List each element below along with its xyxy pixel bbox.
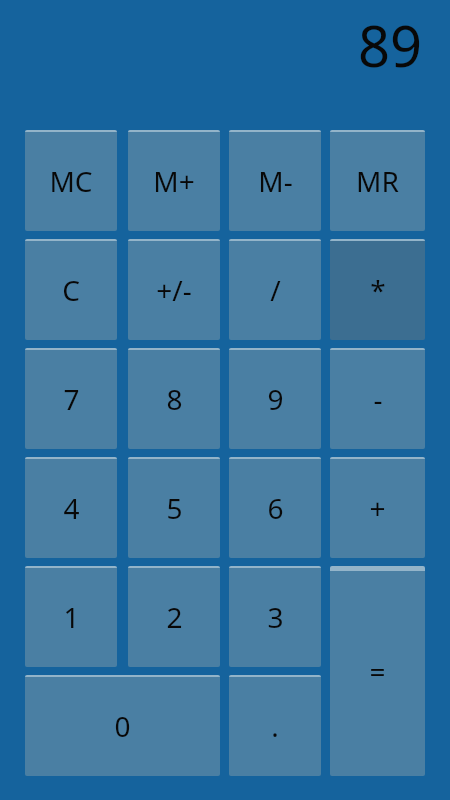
- button[interactable]: .: [229, 675, 321, 776]
- button[interactable]: 2: [128, 566, 220, 667]
- button[interactable]: /: [229, 239, 321, 340]
- button[interactable]: *: [330, 239, 425, 340]
- staticText: 1: [63, 598, 80, 636]
- staticText: M+: [153, 162, 195, 200]
- staticText: +: [369, 489, 386, 527]
- staticText: MC: [49, 162, 93, 200]
- staticText: 4: [63, 489, 80, 527]
- button[interactable]: 5: [128, 457, 220, 558]
- staticText: +/-: [156, 271, 192, 309]
- button[interactable]: MR: [330, 130, 425, 231]
- button[interactable]: 9: [229, 348, 321, 449]
- staticText: 9: [267, 380, 284, 418]
- button[interactable]: MC: [25, 130, 117, 231]
- button[interactable]: M+: [128, 130, 220, 231]
- staticText: 89: [357, 7, 422, 83]
- staticText: MR: [356, 162, 399, 200]
- staticText: -: [373, 380, 383, 418]
- button[interactable]: C: [25, 239, 117, 340]
- staticText: 2: [166, 598, 183, 636]
- button[interactable]: 0: [25, 675, 220, 776]
- staticText: 3: [267, 598, 284, 636]
- staticText: .: [271, 707, 279, 745]
- staticText: 6: [267, 489, 284, 527]
- staticText: 7: [63, 380, 80, 418]
- staticText: M-: [258, 162, 293, 200]
- staticText: C: [62, 271, 80, 309]
- button[interactable]: 6: [229, 457, 321, 558]
- staticText: *: [370, 271, 386, 309]
- button[interactable]: 1: [25, 566, 117, 667]
- staticText: 5: [166, 489, 183, 527]
- button[interactable]: 8: [128, 348, 220, 449]
- staticText: =: [369, 652, 386, 690]
- button[interactable]: 4: [25, 457, 117, 558]
- staticText: /: [270, 271, 281, 309]
- button[interactable]: +: [330, 457, 425, 558]
- button[interactable]: 3: [229, 566, 321, 667]
- staticText: 0: [114, 707, 131, 745]
- staticText: 8: [166, 380, 183, 418]
- button[interactable]: =: [330, 566, 425, 776]
- button[interactable]: +/-: [128, 239, 220, 340]
- button[interactable]: 7: [25, 348, 117, 449]
- button[interactable]: M-: [229, 130, 321, 231]
- button[interactable]: -: [330, 348, 425, 449]
